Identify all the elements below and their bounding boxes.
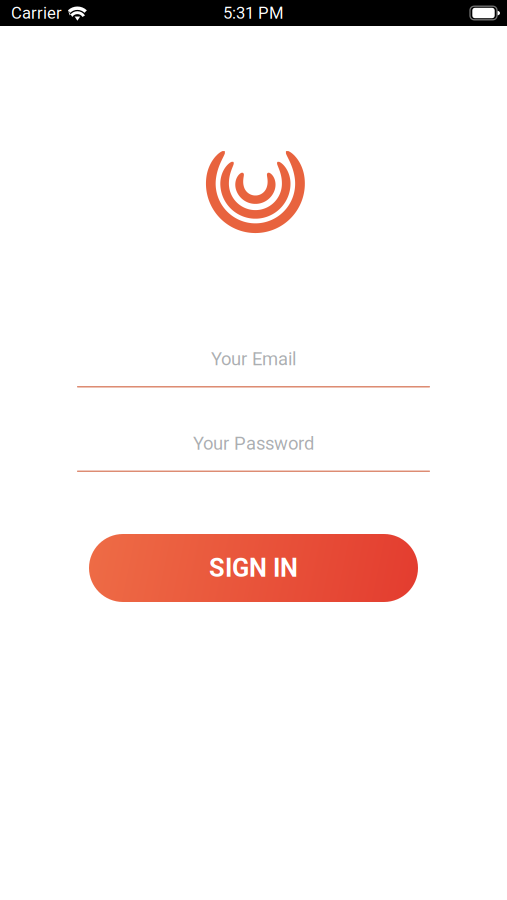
staticText: Carrier [11,3,62,23]
staticText: Your Password [193,433,314,454]
button[interactable]: Your Email [77,349,430,387]
staticText: 5:31 PM [223,3,284,23]
staticText: SIGN IN [209,553,298,583]
button[interactable]: Your Password [77,433,430,472]
button[interactable]: SIGN IN [89,534,418,602]
staticText: Your Email [211,348,296,370]
